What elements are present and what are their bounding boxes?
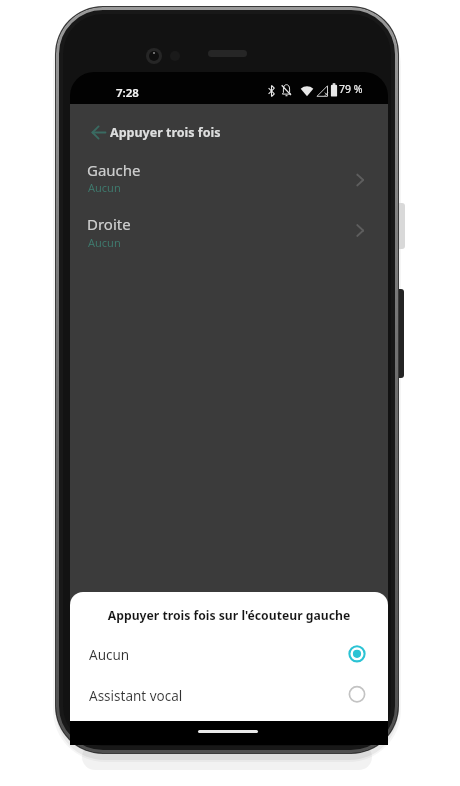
button[interactable] — [84, 119, 116, 148]
staticText: Aucun — [88, 180, 121, 195]
button[interactable] — [70, 156, 388, 208]
staticText: Aucun — [88, 235, 121, 250]
staticText: Droite — [87, 214, 131, 234]
button[interactable] — [70, 676, 388, 716]
button[interactable] — [70, 634, 388, 674]
staticText: Appuyer trois fois sur l'écouteur gauche — [70, 607, 388, 624]
staticText: Gauche — [87, 160, 141, 180]
staticText: Aucun — [89, 646, 130, 664]
staticText: Assistant vocal — [89, 687, 183, 705]
button[interactable] — [70, 210, 388, 262]
staticText: 79 % — [339, 82, 363, 96]
staticText: Appuyer trois fois — [110, 124, 221, 141]
staticText: 7:28 — [116, 85, 139, 101]
